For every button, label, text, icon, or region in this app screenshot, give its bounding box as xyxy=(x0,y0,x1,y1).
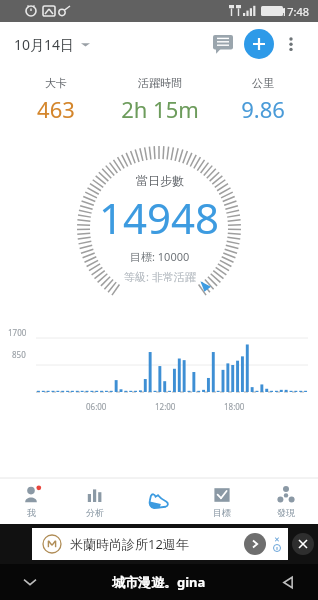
staticText: 目標: 10000 xyxy=(130,249,190,264)
staticText: 活躍時間 xyxy=(138,76,182,90)
staticText: 850 xyxy=(12,349,26,360)
staticText: 公里 xyxy=(252,76,274,90)
staticText: 城市漫遊。gina xyxy=(112,573,206,591)
staticText: 2h 15m xyxy=(121,94,199,124)
button[interactable]: 米蘭時尚診所12週年 xyxy=(32,528,288,560)
staticText: 等級: 非常活躍 xyxy=(124,269,196,284)
button[interactable]: 目標 xyxy=(190,478,254,524)
staticText: 10月14日 xyxy=(14,35,75,54)
staticText: 大卡 xyxy=(45,76,67,90)
button[interactable]: Steps xyxy=(137,480,179,522)
staticText: 目標 xyxy=(213,507,231,518)
button[interactable]: Ad info xyxy=(270,536,284,552)
staticText: 12:00 xyxy=(155,401,176,412)
staticText: 發現 xyxy=(277,507,295,518)
staticText: 我 xyxy=(27,507,36,518)
button[interactable]: Close ad xyxy=(292,533,314,555)
staticText: 18:00 xyxy=(224,401,245,412)
staticText: 17:48 xyxy=(281,4,310,19)
button[interactable]: Open ad xyxy=(244,533,266,555)
staticText: 14948 xyxy=(99,189,220,246)
staticText: 當日步數 xyxy=(136,173,184,188)
button[interactable]: Back xyxy=(276,570,300,594)
button[interactable]: More options xyxy=(276,29,306,59)
button[interactable]: 10月14日 xyxy=(12,29,92,60)
staticText: ✕ xyxy=(274,536,280,544)
staticText: 分析 xyxy=(86,507,104,518)
button[interactable]: 發現 xyxy=(254,478,318,524)
button[interactable]: Messages xyxy=(206,27,240,61)
staticText: 米蘭時尚診所12週年 xyxy=(70,535,189,553)
staticText: 06:00 xyxy=(86,401,107,412)
button[interactable]: 活躍時間 xyxy=(108,72,211,128)
staticText: 463 xyxy=(37,94,75,124)
button[interactable]: 分析 xyxy=(63,478,126,524)
button[interactable]: Hide keyboard xyxy=(18,570,42,594)
button[interactable]: 公里 xyxy=(211,72,314,128)
staticText: 9.86 xyxy=(241,94,285,124)
button[interactable]: Add xyxy=(244,29,274,59)
staticText: 1700 xyxy=(8,327,27,338)
button[interactable]: 大卡 xyxy=(4,72,108,128)
button[interactable]: 我 xyxy=(0,478,63,524)
